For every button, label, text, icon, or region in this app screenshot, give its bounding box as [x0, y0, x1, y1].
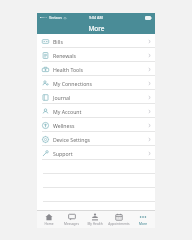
button[interactable]: My Health — [83, 211, 107, 228]
button[interactable]: Health Tools — [37, 62, 155, 76]
staticText: Bills — [53, 38, 148, 45]
staticText: My Health — [87, 222, 103, 226]
staticText: Device Settings — [53, 136, 148, 143]
staticText: Verizon — [49, 15, 62, 20]
staticText: Messages — [64, 222, 79, 226]
staticText: My Account — [53, 108, 148, 115]
staticText: Home — [44, 222, 54, 226]
staticText: Health Tools — [53, 66, 148, 73]
staticText: Journal — [53, 94, 148, 101]
staticText: Appointments — [108, 222, 130, 226]
staticText: Wellness — [53, 122, 148, 129]
button[interactable]: My Account — [37, 104, 155, 118]
staticText: More — [88, 24, 105, 33]
staticText: 9:04 AM — [89, 15, 103, 20]
button[interactable]: Wellness — [37, 118, 155, 132]
button[interactable]: Renewals — [37, 48, 155, 62]
button[interactable]: More — [131, 211, 155, 228]
button[interactable]: Device Settings — [37, 132, 155, 146]
staticText: Support — [53, 150, 148, 157]
staticText: My Connections — [53, 80, 148, 87]
button[interactable]: My Connections — [37, 76, 155, 90]
button[interactable]: Messages — [60, 211, 83, 228]
button[interactable]: Support — [37, 146, 155, 160]
button[interactable]: Appointments — [107, 211, 131, 228]
button[interactable]: Journal — [37, 90, 155, 104]
button[interactable]: Bills — [37, 34, 155, 48]
staticText: More — [139, 222, 147, 226]
button[interactable]: Home — [37, 211, 60, 228]
staticText: Renewals — [53, 52, 148, 59]
